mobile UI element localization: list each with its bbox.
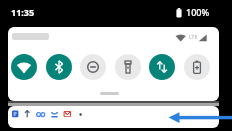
button[interactable] — [80, 54, 106, 80]
button[interactable] — [184, 54, 210, 80]
staticText: 100% — [186, 6, 210, 18]
staticText: LTE — [189, 34, 198, 41]
button[interactable] — [46, 54, 72, 80]
button[interactable] — [115, 54, 141, 80]
button[interactable] — [11, 54, 37, 80]
staticText: 11:35 — [11, 6, 35, 18]
button[interactable] — [149, 54, 175, 80]
button[interactable] — [8, 106, 219, 128]
